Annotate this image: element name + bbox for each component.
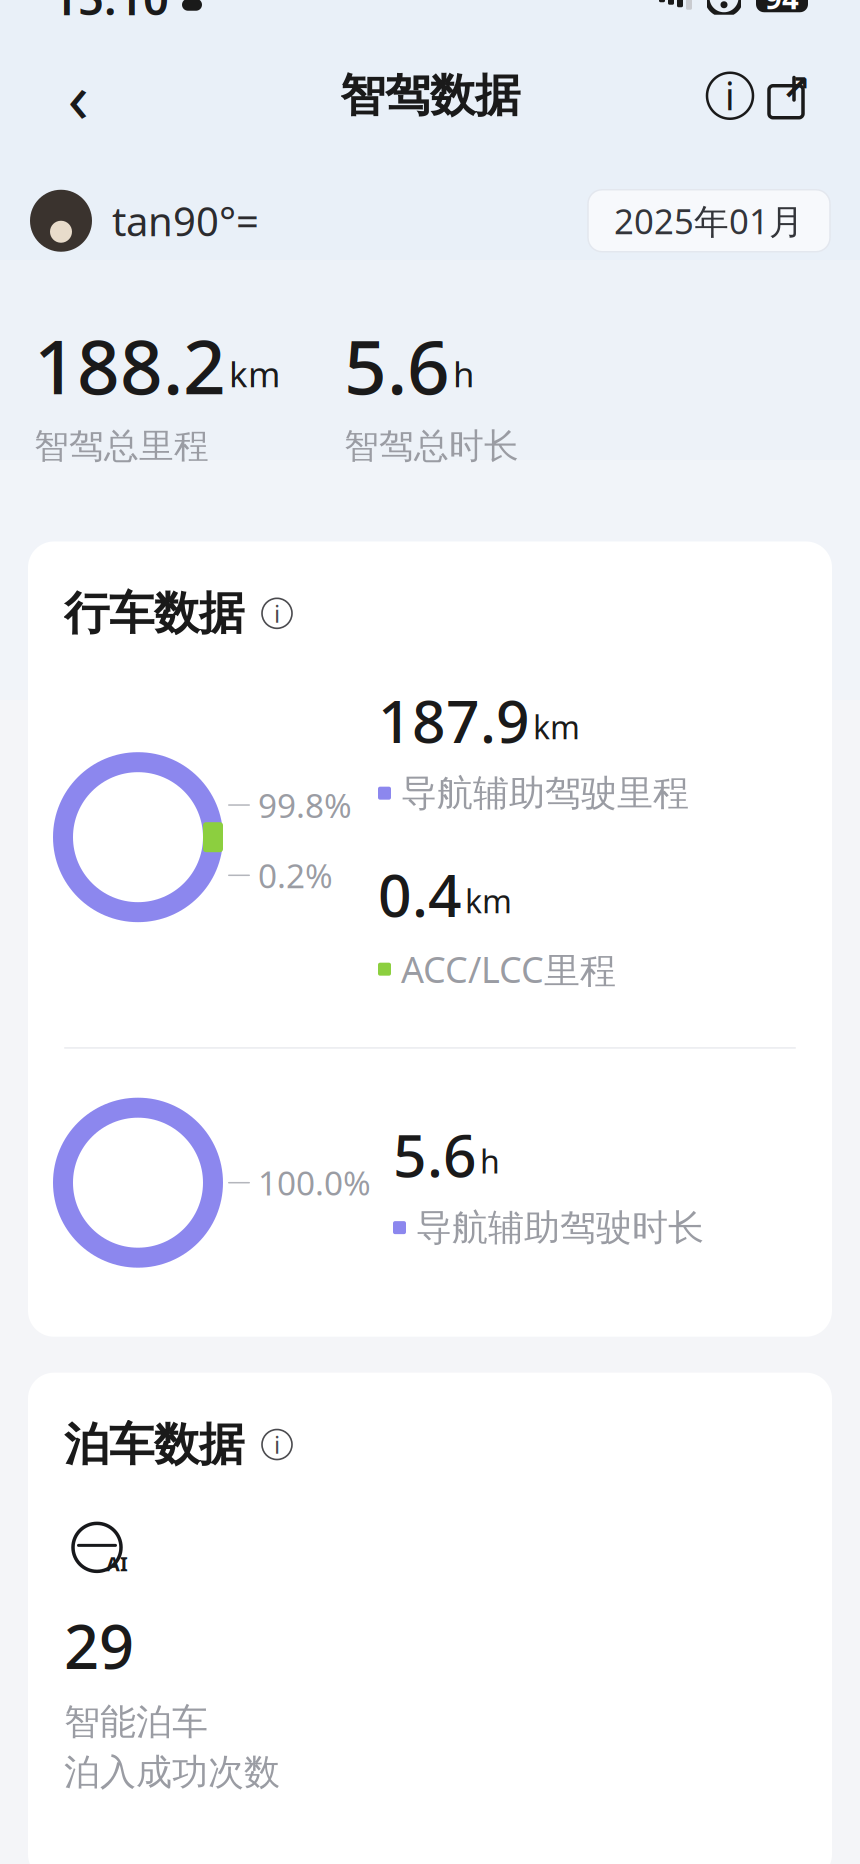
staticText: 94: [765, 0, 799, 17]
staticText: 智驾总里程: [34, 425, 209, 467]
staticText: km: [229, 351, 280, 397]
staticText: 导航辅助驾驶里程: [401, 771, 689, 815]
staticText: i: [274, 1429, 280, 1460]
staticText: i: [725, 71, 735, 121]
staticText: 泊车数据: [64, 1417, 244, 1472]
staticText: 0.2%: [258, 853, 333, 897]
staticText: ‹: [67, 50, 88, 142]
staticText: 29: [64, 1604, 134, 1686]
staticText: 智驾总时长: [344, 425, 519, 467]
staticText: 187.9: [378, 681, 530, 759]
staticText: 100.0%: [258, 1161, 371, 1205]
staticText: h: [453, 351, 474, 397]
staticText: ACC/LCC里程: [401, 945, 616, 993]
button[interactable]: tan90°=: [30, 190, 259, 252]
staticText: 泊入成功次数: [64, 1750, 280, 1794]
staticText: 0.4: [378, 855, 462, 933]
staticText: 智驾数据: [340, 68, 520, 124]
staticText: km: [465, 880, 512, 922]
staticText: 99.8%: [258, 783, 352, 827]
staticText: i: [274, 597, 280, 629]
staticText: 5.6: [344, 316, 450, 415]
staticText: tan90°=: [112, 194, 259, 247]
staticText: 188.2: [34, 316, 226, 415]
staticText: 15:10: [52, 0, 169, 28]
button[interactable]: Back: [46, 64, 110, 128]
staticText: ↗: [781, 68, 810, 107]
staticText: AI: [106, 1550, 128, 1577]
button[interactable]: 行车数据 information: [258, 594, 296, 632]
button[interactable]: 泊车数据 information: [258, 1425, 296, 1463]
staticText: h: [480, 1140, 500, 1182]
staticText: 导航辅助驾驶时长: [416, 1205, 704, 1250]
staticText: 行车数据: [64, 585, 244, 641]
button[interactable]: 2025年01月: [588, 190, 830, 252]
staticText: 2025年01月: [614, 198, 804, 244]
staticText: 智能泊车: [64, 1700, 208, 1744]
staticText: 5.6: [393, 1116, 477, 1193]
button[interactable]: Information: [702, 68, 758, 124]
staticText: km: [533, 705, 580, 748]
button[interactable]: Share: [758, 68, 814, 124]
